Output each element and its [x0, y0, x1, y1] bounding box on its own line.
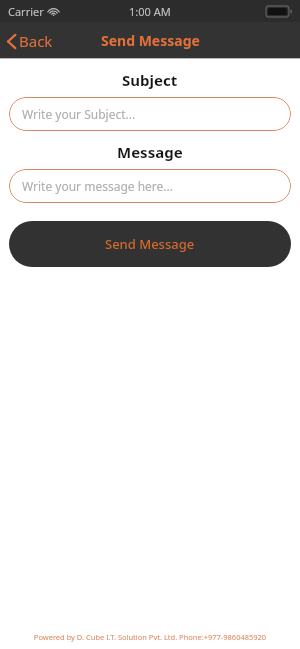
button[interactable]: Back [0, 27, 63, 55]
button[interactable]: Write your Subject... [9, 97, 291, 131]
staticText: Message [117, 142, 183, 162]
staticText: Send Message [105, 235, 195, 253]
staticText: Send Message [101, 31, 200, 50]
staticText: Back [19, 31, 53, 51]
button[interactable]: Write your message here... [9, 169, 291, 203]
staticText: 1:00 AM [129, 4, 171, 19]
staticText: Write your message here... [22, 178, 173, 194]
staticText: Subject [122, 70, 178, 90]
button[interactable]: Send Message [9, 221, 291, 267]
staticText: Powered by D. Cube I.T. Solution Pvt. Lt… [0, 632, 300, 642]
staticText: Write your Subject... [22, 106, 136, 122]
staticText: Carrier [8, 4, 44, 19]
